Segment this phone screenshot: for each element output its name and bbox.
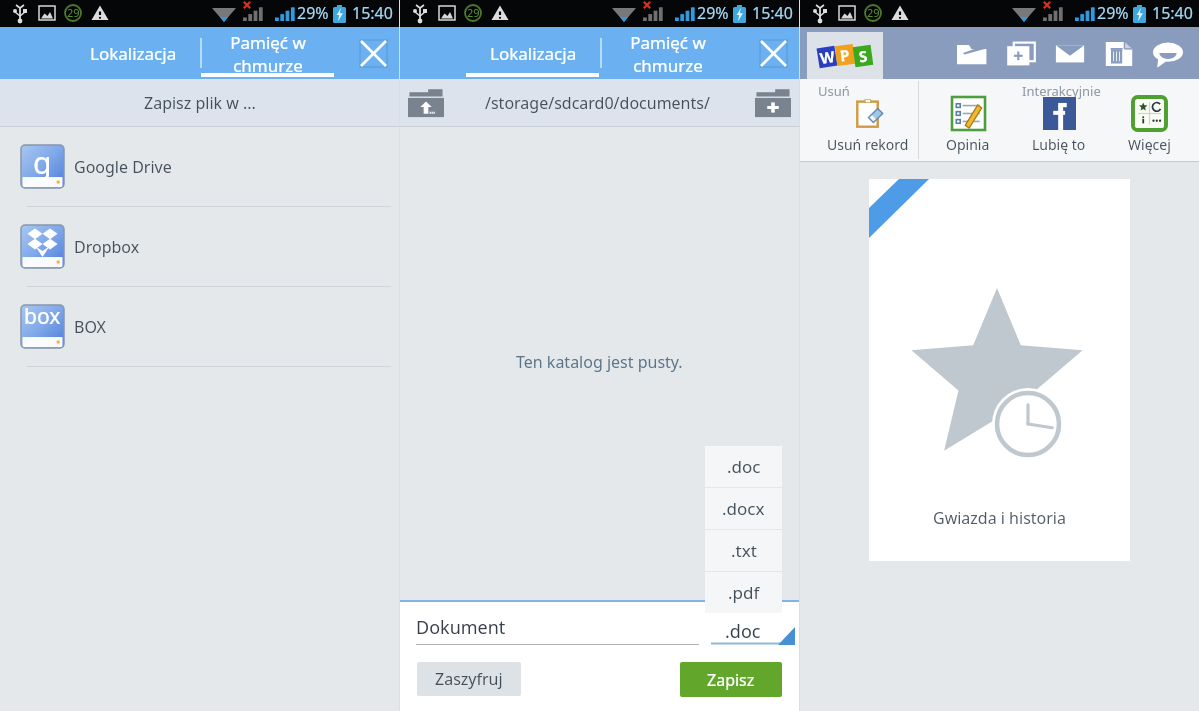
staticText: W (818, 46, 836, 68)
button[interactable]: .txt (705, 530, 782, 571)
staticText: Usuń (818, 82, 850, 100)
button[interactable]: New folder (747, 79, 799, 126)
button[interactable]: Usuń rekord (823, 97, 913, 154)
button[interactable]: Close (736, 27, 799, 79)
button[interactable]: Lokalizacja (0, 27, 200, 79)
staticText: 29 (867, 5, 880, 20)
staticText: Ten katalog jest pusty. (516, 351, 683, 373)
staticText: BOX (74, 316, 106, 338)
staticText: Opinia (946, 135, 990, 154)
button[interactable]: Parent folder (400, 79, 452, 126)
staticText: Google Drive (74, 156, 172, 178)
button[interactable]: New (1004, 37, 1037, 70)
staticText: S (858, 45, 869, 66)
button[interactable]: Więcej (1104, 97, 1194, 154)
staticText: 15:40 (352, 2, 393, 24)
staticText: 29 (67, 5, 80, 20)
staticText: 29 (467, 5, 480, 20)
button[interactable]: .docx (705, 488, 782, 529)
staticText: Dokument (416, 615, 506, 640)
staticText: 29% (297, 2, 329, 24)
button[interactable]: Opinia (923, 97, 1013, 154)
button[interactable]: g (0, 127, 399, 206)
staticText: P (839, 44, 851, 66)
button[interactable]: Gwiazda i historia (869, 179, 1130, 561)
staticText: 29% (1097, 2, 1129, 24)
button[interactable]: .doc (705, 446, 782, 487)
button[interactable]: Mail (1053, 37, 1086, 70)
staticText: /storage/sdcard0/documents/ (485, 92, 710, 114)
staticText: Lubię to (1032, 135, 1086, 154)
staticText: Dropbox (74, 236, 140, 258)
staticText: Interakcyjnie (1022, 82, 1101, 100)
staticText: .doc (727, 455, 761, 478)
button[interactable]: Zapisz (680, 662, 782, 697)
button[interactable]: Delete (1102, 37, 1135, 70)
button[interactable]: Close (336, 27, 399, 79)
staticText: 15:40 (1152, 2, 1193, 24)
staticText: Usuń rekord (827, 135, 909, 154)
staticText: g (33, 142, 52, 183)
staticText: Gwiazda i historia (933, 507, 1066, 529)
staticText: .pdf (728, 581, 760, 604)
staticText: .docx (722, 497, 765, 520)
button[interactable]: Pamięć w chmurze (600, 27, 736, 79)
button[interactable]: Lokalizacja (400, 27, 600, 79)
staticText: 29% (697, 2, 729, 24)
button[interactable]: WPS Office (807, 32, 883, 79)
staticText: Zapisz (707, 669, 755, 691)
staticText: Zaszyfruj (435, 668, 503, 690)
staticText: Więcej (1128, 135, 1171, 154)
button[interactable]: .pdf (705, 572, 782, 613)
staticText: box (24, 302, 61, 331)
button[interactable]: Lubię to (1014, 97, 1104, 154)
button[interactable]: Zaszyfruj (417, 662, 521, 696)
staticText: Pamięć w chmurze (230, 31, 306, 77)
button[interactable]: box (0, 287, 399, 366)
staticText: .doc (725, 619, 761, 644)
staticText: .txt (731, 539, 757, 562)
button[interactable]: Pamięć w chmurze (200, 27, 336, 79)
staticText: 15:40 (752, 2, 793, 24)
button[interactable]: Comment (1151, 37, 1184, 70)
staticText: Lokalizacja (490, 42, 577, 65)
staticText: Pamięć w chmurze (630, 31, 706, 77)
staticText: Zapisz plik w ... (144, 92, 256, 114)
staticText: Lokalizacja (90, 42, 177, 65)
button[interactable]: Dropbox (0, 207, 399, 286)
button[interactable]: Open (955, 37, 988, 70)
